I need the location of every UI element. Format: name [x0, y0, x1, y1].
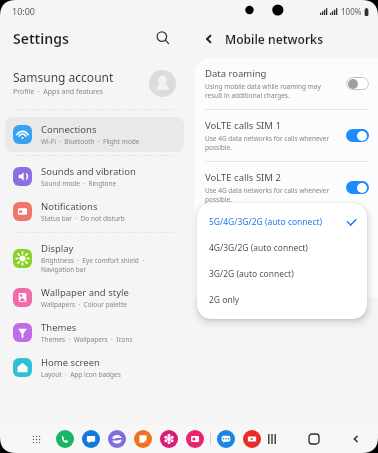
button[interactable]: Connections	[5, 117, 184, 152]
button[interactable]: 2G only	[197, 287, 367, 313]
staticText: Wallpapers · Colour palette	[41, 300, 127, 309]
button[interactable]: Camera	[186, 430, 204, 448]
button[interactable]: Chat	[217, 430, 235, 448]
button[interactable]: Apps	[26, 429, 46, 449]
staticText: Brightness · Eye comfort shield · Naviga…	[41, 256, 144, 274]
staticText: Themes · Wallpapers · Icons	[41, 335, 133, 344]
button[interactable]: VoLTE calls SIM 1	[194, 110, 378, 161]
staticText: 3G/2G (auto connect)	[209, 268, 357, 280]
button[interactable]: Home screen	[5, 350, 184, 385]
button[interactable]: Home	[303, 428, 325, 450]
button[interactable]: Internet	[108, 430, 126, 448]
button[interactable]: Search	[151, 26, 175, 50]
staticText: Data roaming	[205, 67, 267, 80]
staticText: Connections	[41, 123, 97, 136]
button[interactable]	[346, 129, 369, 142]
button[interactable]: Wallpaper and style	[5, 280, 184, 315]
button[interactable]: Notifications	[5, 194, 184, 229]
staticText: 4G/3G/2G (auto connect)	[209, 242, 357, 254]
staticText: VoLTE calls SIM 2	[205, 171, 281, 184]
staticText: Use 4G data networks for calls whenever …	[205, 134, 330, 152]
button[interactable]: YouTube	[243, 430, 261, 448]
button[interactable]: 4G/3G/2G (auto connect)	[197, 235, 367, 261]
staticText: 100%	[341, 6, 362, 17]
button[interactable]: Notes	[134, 430, 152, 448]
staticText: Use 4G data networks for calls whenever …	[205, 186, 330, 204]
button[interactable]: Store	[160, 430, 178, 448]
button[interactable]	[346, 181, 369, 194]
staticText: 10:00	[12, 5, 36, 17]
button[interactable]: Recents	[261, 428, 283, 450]
staticText: Profile · Apps and features	[13, 87, 104, 97]
staticText: Sound mode · Ringtone	[41, 179, 117, 188]
button[interactable]: Display	[5, 236, 184, 280]
staticText: Samsung account	[13, 69, 114, 85]
button[interactable]: Network operators	[194, 271, 378, 298]
button[interactable]: Back	[198, 28, 220, 50]
button[interactable]: 3G/2G (auto connect)	[197, 261, 367, 287]
staticText: 5G/4G/3G/2G (auto connect)	[209, 216, 346, 228]
button[interactable]: 5G/4G/3G/2G (auto connect)	[197, 209, 367, 235]
button[interactable]: Data roaming	[194, 58, 378, 109]
staticText: Status bar · Do not disturb	[41, 214, 125, 223]
button[interactable]: Messages	[82, 430, 100, 448]
staticText: Themes	[41, 321, 77, 334]
staticText: Layout · App icon badges	[41, 370, 121, 379]
staticText: Settings	[13, 29, 69, 48]
staticText: Notifications	[41, 200, 98, 213]
staticText: Wallpaper and style	[41, 286, 129, 299]
staticText: Wi-Fi · Bluetooth · Flight mode	[41, 137, 140, 146]
staticText: Mobile networks	[225, 31, 324, 47]
button[interactable]: Phone	[56, 430, 74, 448]
staticText: VoLTE calls SIM 1	[205, 119, 281, 132]
staticText: 2G only	[209, 294, 357, 306]
button[interactable]: VoLTE calls SIM 2	[194, 162, 378, 213]
button[interactable]: Sounds and vibration	[5, 159, 184, 194]
staticText: Display	[41, 242, 74, 255]
staticText: Using mobile data while roaming may resu…	[205, 82, 321, 100]
button[interactable]	[346, 77, 369, 90]
button[interactable]: Back	[345, 428, 367, 450]
staticText: Sounds and vibration	[41, 165, 136, 178]
button[interactable]: Samsung account	[0, 60, 189, 106]
button[interactable]: Themes	[5, 315, 184, 350]
staticText: Home screen	[41, 356, 100, 369]
